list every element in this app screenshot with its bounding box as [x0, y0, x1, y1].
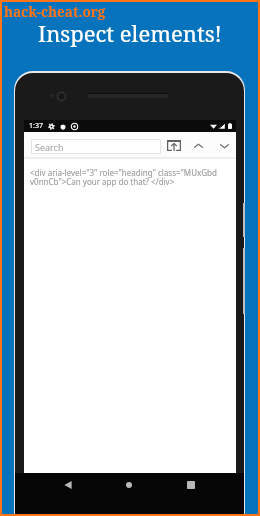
button[interactable]: Open in new window — [164, 137, 184, 154]
staticText: Search — [35, 141, 64, 153]
staticText: <div aria-level="3" role="heading" class… — [30, 167, 234, 188]
button[interactable]: Next result — [216, 137, 233, 154]
staticText: Inspect elements! — [0, 18, 260, 48]
staticText: hack-cheat.org — [4, 3, 106, 21]
button[interactable]: Search — [31, 139, 161, 154]
button[interactable]: Back — [60, 477, 76, 493]
button[interactable]: Recent apps — [183, 477, 199, 493]
button[interactable]: Previous result — [190, 137, 207, 154]
button[interactable]: Home — [121, 477, 137, 493]
staticText: 1:37 — [29, 121, 43, 131]
